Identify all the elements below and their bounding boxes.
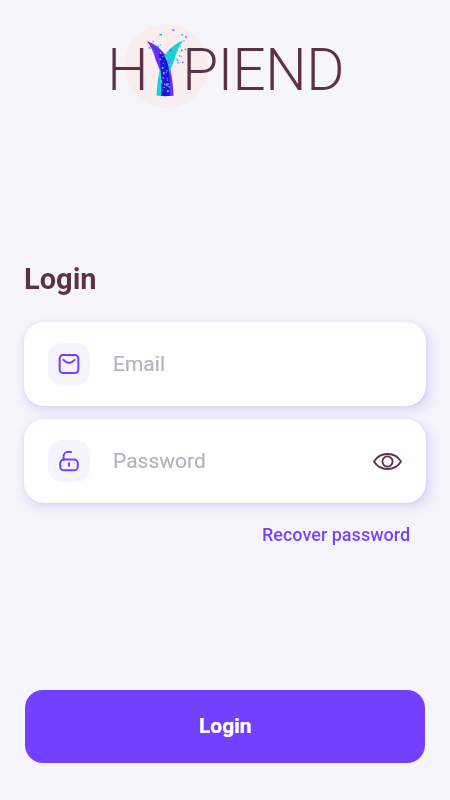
staticText: PIEND bbox=[182, 35, 344, 104]
staticText: Email bbox=[113, 352, 165, 377]
button[interactable]: Password bbox=[24, 419, 426, 503]
button[interactable]: Login bbox=[25, 690, 425, 763]
button[interactable]: Show password bbox=[367, 441, 407, 481]
button[interactable]: Recover password bbox=[262, 518, 450, 551]
button[interactable]: Email bbox=[24, 322, 426, 406]
staticText: Login bbox=[199, 714, 252, 739]
staticText: Password bbox=[113, 449, 206, 474]
staticText: Login bbox=[24, 262, 97, 296]
staticText: H bbox=[107, 35, 149, 104]
